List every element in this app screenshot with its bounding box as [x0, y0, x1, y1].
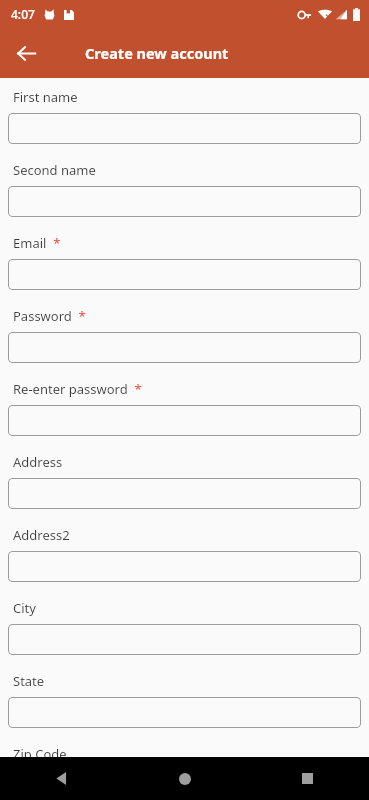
- button[interactable]: [8, 624, 361, 655]
- staticText: Address2: [13, 526, 70, 544]
- button[interactable]: Recent apps: [246, 757, 369, 800]
- staticText: State: [13, 672, 45, 690]
- staticText: Zip Code: [13, 745, 67, 763]
- staticText: Address: [13, 453, 63, 471]
- staticText: First name: [13, 88, 78, 106]
- button[interactable]: Home: [123, 757, 246, 800]
- button[interactable]: [8, 770, 361, 800]
- button[interactable]: [8, 113, 361, 144]
- button[interactable]: [8, 697, 361, 728]
- staticText: Re-enter password *: [13, 380, 142, 398]
- button[interactable]: [8, 332, 361, 363]
- staticText: 4:07: [11, 6, 35, 22]
- button[interactable]: [8, 551, 361, 582]
- staticText: Second name: [13, 161, 96, 179]
- button[interactable]: [8, 259, 361, 290]
- staticText: Create new account: [85, 43, 229, 63]
- button[interactable]: [8, 186, 361, 217]
- button[interactable]: [8, 405, 361, 436]
- button[interactable]: Back: [0, 757, 123, 800]
- staticText: City: [13, 599, 36, 617]
- staticText: Email *: [13, 234, 61, 252]
- button[interactable]: [8, 478, 361, 509]
- staticText: Password *: [13, 307, 86, 325]
- button[interactable]: Back: [8, 35, 44, 71]
